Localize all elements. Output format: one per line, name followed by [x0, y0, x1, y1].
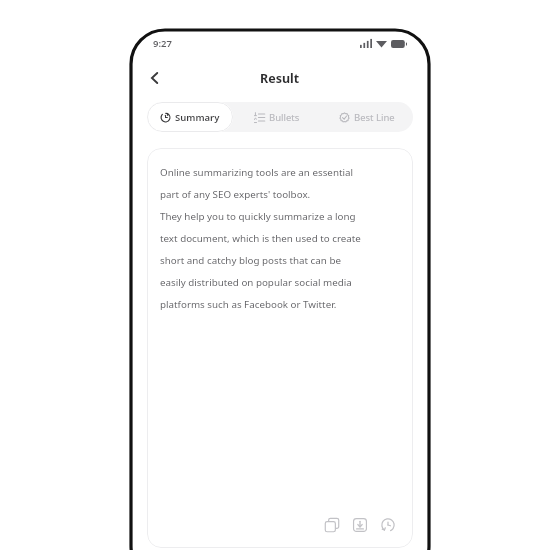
- staticText: short and catchy blog posts that can be: [160, 254, 341, 267]
- staticText: Result: [260, 70, 300, 87]
- button[interactable]: Back: [142, 65, 168, 91]
- staticText: platforms such as Facebook or Twitter.: [160, 298, 337, 311]
- button[interactable]: Copy: [321, 514, 343, 536]
- button[interactable]: Regenerate: [377, 514, 399, 536]
- button[interactable]: Best Line: [321, 102, 413, 132]
- staticText: Online summarizing tools are an essentia…: [160, 166, 354, 179]
- button[interactable]: Summary: [147, 102, 233, 132]
- button[interactable]: Download: [349, 514, 371, 536]
- staticText: 9:27: [153, 37, 172, 50]
- staticText: They help you to quickly summarize a lon…: [160, 210, 356, 223]
- button[interactable]: Bullets: [233, 102, 321, 132]
- staticText: Summary: [175, 111, 220, 124]
- staticText: Best Line: [354, 111, 395, 124]
- staticText: easily distributed on popular social med…: [160, 276, 352, 289]
- staticText: text document, which is then used to cre…: [160, 232, 361, 245]
- staticText: part of any SEO experts' toolbox.: [160, 188, 311, 201]
- staticText: Bullets: [269, 111, 300, 124]
